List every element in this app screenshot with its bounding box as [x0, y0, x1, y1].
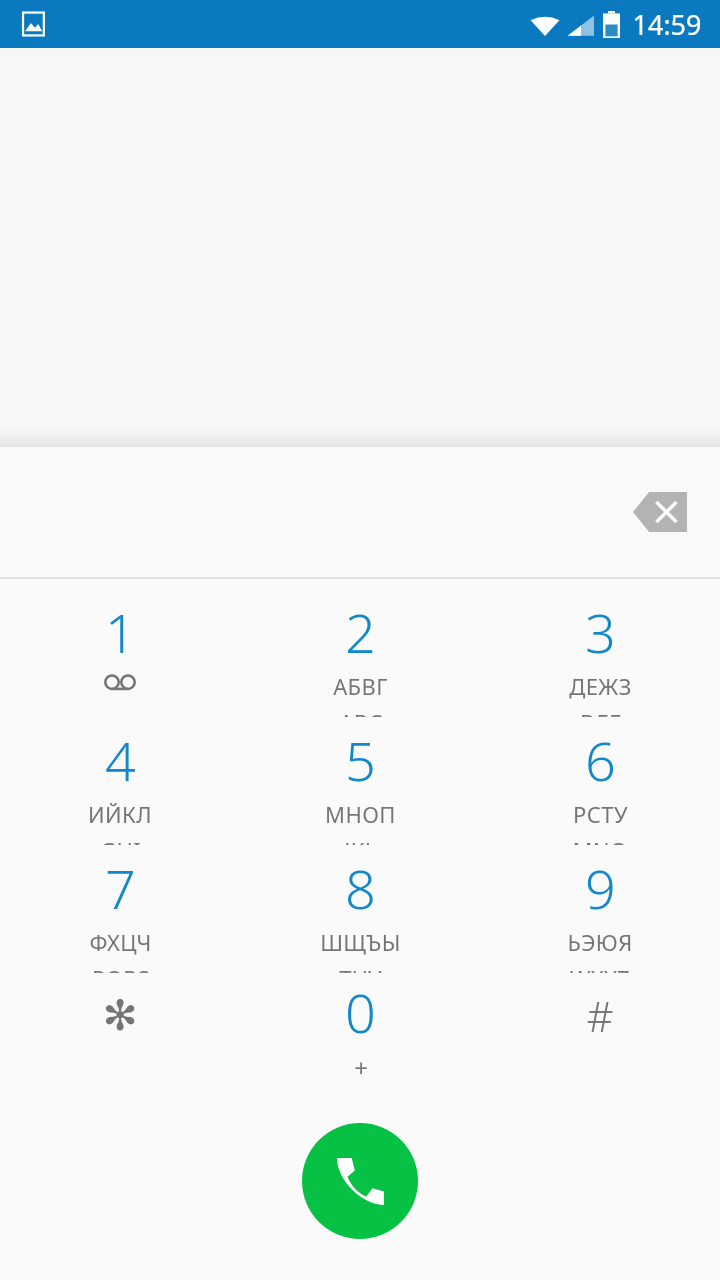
staticText: 4 [105, 723, 136, 797]
staticText: PQRS [92, 963, 150, 973]
button[interactable]: 7 [0, 845, 240, 973]
staticText: 6 [585, 723, 616, 797]
button[interactable]: Backspace [622, 479, 698, 545]
button[interactable]: 8 [240, 845, 480, 973]
button[interactable]: 4 [0, 717, 240, 845]
staticText: 0 [345, 975, 376, 1049]
staticText: + [354, 1051, 368, 1084]
staticText: ДЕЖЗ [569, 671, 632, 701]
staticText: 5 [345, 723, 376, 797]
staticText: АБВГ [333, 671, 388, 701]
button[interactable]: 6 [480, 717, 720, 845]
staticText: ИЙКЛ [88, 799, 152, 829]
button[interactable]: 0 [240, 973, 480, 1093]
staticText: DEF [580, 707, 621, 717]
staticText: РСТУ [573, 799, 628, 829]
button[interactable]: ✻ [0, 973, 240, 1093]
button[interactable]: Call [302, 1123, 418, 1239]
staticText: 7 [105, 851, 136, 925]
staticText: JKL [344, 835, 377, 845]
staticText: # [586, 987, 614, 1044]
staticText: ШЩЪЫ [320, 927, 401, 957]
staticText: ФХЦЧ [89, 927, 152, 957]
staticText: 2 [345, 595, 376, 669]
button[interactable]: 1 [0, 589, 240, 717]
staticText: GHI [100, 835, 141, 845]
staticText: ЬЭЮЯ [567, 927, 633, 957]
staticText: ✻ [102, 991, 138, 1040]
staticText: 14:59 [632, 6, 702, 43]
staticText: 3 [585, 595, 616, 669]
staticText: WXYZ [570, 963, 630, 973]
staticText: TUV [339, 963, 382, 973]
button[interactable]: 9 [480, 845, 720, 973]
button[interactable]: 5 [240, 717, 480, 845]
staticText: ABC [339, 707, 383, 717]
button[interactable]: # [480, 973, 720, 1093]
staticText: 8 [345, 851, 376, 925]
button[interactable]: 2 [240, 589, 480, 717]
staticText: 9 [585, 851, 616, 925]
staticText: 1 [105, 595, 136, 669]
staticText: MNO [572, 835, 628, 845]
staticText: МНОП [325, 799, 396, 829]
button[interactable]: 3 [480, 589, 720, 717]
